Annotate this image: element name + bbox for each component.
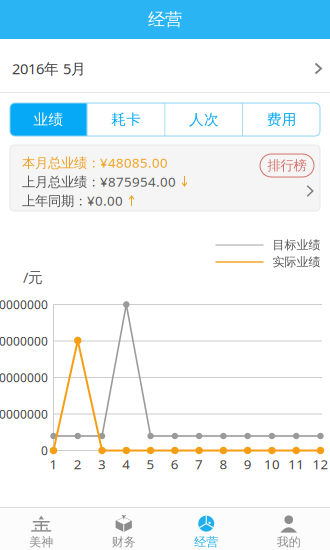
button[interactable]: 业绩 bbox=[10, 103, 87, 136]
staticText: 业绩 bbox=[33, 110, 63, 128]
staticText: 实际业绩 bbox=[272, 255, 320, 269]
staticText: 本月总业绩：¥48085.00 bbox=[22, 154, 168, 171]
staticText: 5 bbox=[147, 455, 155, 473]
button[interactable]: 经营 bbox=[165, 508, 247, 550]
button[interactable]: 美神 bbox=[0, 508, 82, 550]
staticText: 我的 bbox=[277, 535, 301, 549]
staticText: 2 bbox=[74, 455, 82, 473]
staticText: 12 bbox=[312, 455, 328, 473]
staticText: 经营 bbox=[194, 535, 218, 549]
staticText: 目标业绩 bbox=[272, 238, 320, 252]
button[interactable]: 本月总业绩：¥48085.00 bbox=[0, 136, 330, 211]
staticText: 11 bbox=[288, 455, 304, 473]
staticText: 上月总业绩：¥875954.00 bbox=[22, 173, 176, 190]
staticText: 费用 bbox=[267, 110, 297, 128]
staticText: 经营 bbox=[148, 9, 182, 30]
staticText: 0 bbox=[41, 442, 48, 458]
staticText: 美神 bbox=[29, 535, 53, 549]
staticText: 上年同期：¥0.00 bbox=[22, 192, 123, 209]
staticText: 3000000000000 bbox=[0, 333, 48, 349]
staticText: 人次 bbox=[189, 110, 219, 128]
staticText: 2016年 5月 bbox=[12, 59, 86, 78]
staticText: 3 bbox=[98, 455, 106, 473]
staticText: 4 bbox=[122, 455, 130, 473]
staticText: /元 bbox=[23, 267, 43, 287]
button[interactable]: 2016年 5月 bbox=[0, 39, 330, 92]
staticText: 2000000000000 bbox=[0, 369, 48, 385]
staticText: 排行榜 bbox=[267, 157, 306, 174]
staticText: 1000000000000 bbox=[0, 406, 48, 422]
staticText: 7 bbox=[195, 455, 203, 473]
staticText: 1 bbox=[49, 455, 57, 473]
button[interactable]: 我的 bbox=[247, 508, 330, 550]
button[interactable]: 费用 bbox=[243, 103, 320, 136]
button[interactable]: 耗卡 bbox=[88, 103, 165, 136]
staticText: 耗卡 bbox=[111, 110, 141, 128]
staticText: 6 bbox=[171, 455, 179, 473]
button[interactable]: 财务 bbox=[82, 508, 165, 550]
button[interactable]: 排行榜 bbox=[260, 154, 314, 177]
staticText: 4000000000000 bbox=[0, 296, 48, 312]
button[interactable]: 人次 bbox=[165, 103, 242, 136]
staticText: 8 bbox=[219, 455, 227, 473]
staticText: 10 bbox=[264, 455, 280, 473]
staticText: 9 bbox=[244, 455, 252, 473]
staticText: 财务 bbox=[112, 535, 136, 549]
